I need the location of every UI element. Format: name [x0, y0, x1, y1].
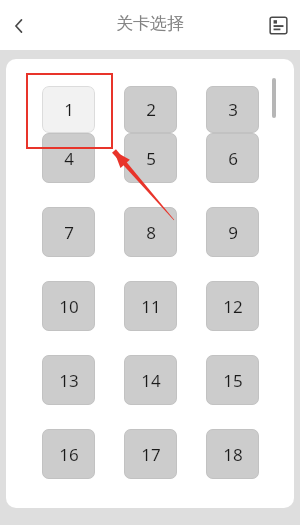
- staticText: 8: [146, 221, 156, 244]
- staticText: 17: [141, 443, 161, 466]
- staticText: 1: [64, 98, 74, 121]
- staticText: 18: [223, 443, 243, 466]
- staticText: 6: [228, 147, 238, 170]
- button[interactable]: 6: [206, 133, 259, 183]
- button[interactable]: 13: [42, 355, 95, 405]
- button[interactable]: 18: [206, 429, 259, 479]
- staticText: 4: [64, 147, 74, 170]
- button[interactable]: 8: [124, 207, 177, 257]
- button[interactable]: 11: [124, 281, 177, 331]
- button[interactable]: 返回: [6, 13, 32, 39]
- button[interactable]: 说明: [264, 11, 292, 39]
- button[interactable]: 14: [124, 355, 177, 405]
- button[interactable]: 12: [206, 281, 259, 331]
- staticText: 10: [59, 295, 79, 318]
- button[interactable]: 15: [206, 355, 259, 405]
- button[interactable]: 4: [42, 133, 95, 183]
- staticText: 13: [59, 369, 79, 392]
- button[interactable]: 10: [42, 281, 95, 331]
- button[interactable]: 2: [124, 86, 177, 133]
- staticText: 9: [228, 221, 238, 244]
- staticText: 7: [64, 221, 74, 244]
- staticText: 16: [59, 443, 79, 466]
- button[interactable]: 1: [42, 86, 95, 133]
- staticText: 15: [223, 369, 243, 392]
- staticText: 2: [146, 98, 156, 121]
- button[interactable]: 7: [42, 207, 95, 257]
- staticText: 11: [141, 295, 161, 318]
- button[interactable]: 16: [42, 429, 95, 479]
- button[interactable]: 5: [124, 133, 177, 183]
- staticText: 12: [223, 295, 243, 318]
- staticText: 关卡选择: [0, 13, 300, 34]
- button[interactable]: 3: [206, 86, 259, 133]
- button[interactable]: 17: [124, 429, 177, 479]
- staticText: 14: [141, 369, 161, 392]
- staticText: 5: [146, 147, 156, 170]
- button[interactable]: 9: [206, 207, 259, 257]
- staticText: 3: [228, 98, 238, 121]
